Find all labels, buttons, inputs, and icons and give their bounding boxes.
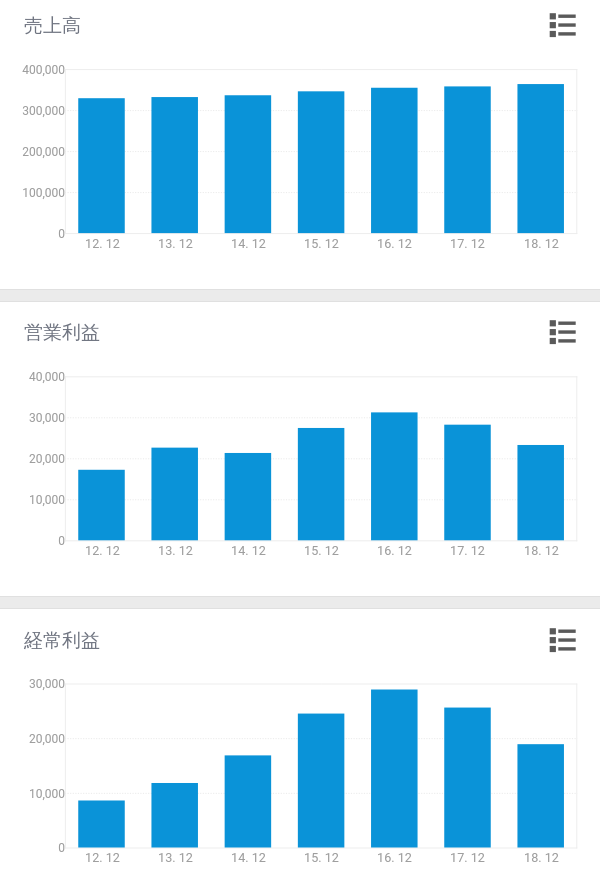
staticText: 16. 12 [377, 543, 412, 558]
staticText: 10,000 [28, 787, 65, 801]
staticText: 20,000 [28, 452, 65, 466]
staticText: 17. 12 [450, 850, 485, 865]
staticText: 14. 12 [231, 850, 266, 865]
staticText: 10,000 [28, 493, 65, 507]
staticText: 13. 12 [158, 236, 193, 251]
staticText: 300,000 [22, 104, 65, 118]
staticText: 13. 12 [158, 850, 193, 865]
staticText: 30,000 [28, 411, 65, 425]
button[interactable]: Display options [544, 315, 580, 347]
staticText: 18. 12 [524, 850, 559, 865]
staticText: 17. 12 [450, 543, 485, 558]
staticText: 12. 12 [85, 543, 120, 558]
staticText: 16. 12 [377, 236, 412, 251]
button[interactable]: Display options [544, 8, 580, 40]
staticText: 13. 12 [158, 543, 193, 558]
staticText: 経常利益 [24, 629, 100, 653]
staticText: 14. 12 [231, 236, 266, 251]
staticText: 12. 12 [85, 236, 120, 251]
staticText: 15. 12 [304, 236, 339, 251]
button[interactable]: Display options [544, 623, 580, 655]
staticText: 200,000 [22, 145, 65, 159]
staticText: 0 [58, 841, 65, 855]
staticText: 15. 12 [304, 850, 339, 865]
staticText: 営業利益 [24, 321, 100, 345]
staticText: 12. 12 [85, 850, 120, 865]
staticText: 30,000 [28, 677, 65, 691]
staticText: 15. 12 [304, 543, 339, 558]
staticText: 100,000 [22, 186, 65, 200]
staticText: 40,000 [28, 370, 65, 384]
staticText: 18. 12 [524, 236, 559, 251]
staticText: 0 [58, 227, 65, 241]
staticText: 20,000 [28, 732, 65, 746]
staticText: 14. 12 [231, 543, 266, 558]
staticText: 400,000 [22, 63, 65, 77]
staticText: 18. 12 [524, 543, 559, 558]
staticText: 売上高 [24, 14, 81, 38]
staticText: 0 [58, 534, 65, 548]
staticText: 16. 12 [377, 850, 412, 865]
staticText: 17. 12 [450, 236, 485, 251]
